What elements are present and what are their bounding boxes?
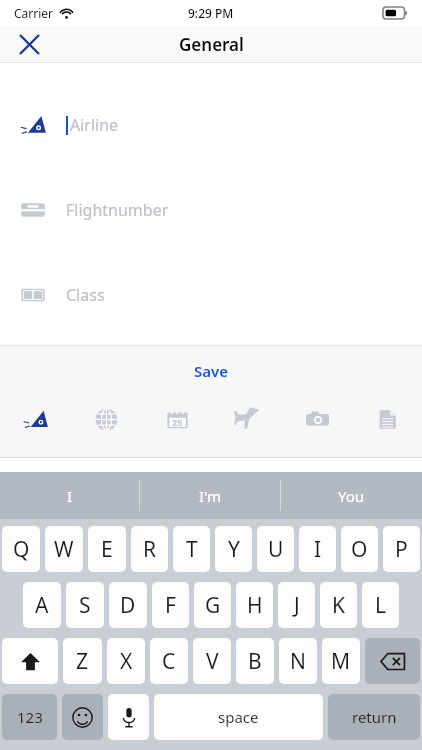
button[interactable]: A	[23, 582, 61, 628]
staticText: You	[338, 486, 365, 506]
button[interactable]: Backspace	[365, 638, 420, 684]
button[interactable]: I	[299, 526, 336, 572]
staticText: K	[332, 591, 345, 620]
button[interactable]: Z	[63, 638, 102, 684]
button[interactable]: Airline	[0, 395, 71, 443]
button[interactable]: F	[152, 582, 189, 628]
button[interactable]: T	[173, 526, 210, 572]
button[interactable]: Globe	[71, 395, 142, 443]
button[interactable]: Calendar	[142, 395, 212, 443]
staticText: E	[101, 535, 113, 564]
staticText: return	[352, 707, 397, 727]
button[interactable]: O	[341, 526, 378, 572]
button[interactable]: D	[109, 582, 147, 628]
staticText: U	[268, 535, 284, 564]
button[interactable]: Class	[0, 277, 422, 313]
button[interactable]: Emoji	[62, 694, 103, 740]
staticText: L	[375, 591, 387, 620]
staticText: Class	[66, 284, 105, 306]
button[interactable]: Y	[215, 526, 252, 572]
button[interactable]: V	[193, 638, 231, 684]
staticText: Carrier	[14, 5, 54, 21]
staticText: 25	[172, 416, 183, 428]
staticText: C	[162, 647, 176, 676]
staticText: M	[331, 647, 351, 676]
staticText: 9:29 PM	[188, 5, 234, 21]
staticText: G	[205, 591, 221, 620]
staticText: T	[186, 535, 198, 564]
button[interactable]: return	[328, 694, 420, 740]
staticText: W	[54, 535, 74, 564]
button[interactable]: Camera	[282, 395, 352, 443]
button[interactable]: Document	[352, 395, 422, 443]
button[interactable]: H	[236, 582, 273, 628]
staticText: Z	[76, 647, 89, 676]
button[interactable]: B	[236, 638, 274, 684]
staticText: B	[248, 647, 262, 676]
staticText: X	[120, 647, 133, 676]
staticText: P	[395, 535, 408, 564]
button[interactable]: E	[88, 526, 126, 572]
staticText: I	[67, 486, 73, 506]
staticText: H	[247, 591, 263, 620]
button[interactable]: Close	[10, 26, 48, 63]
button[interactable]: J	[278, 582, 315, 628]
button[interactable]: N	[279, 638, 317, 684]
button[interactable]: I'm	[140, 472, 281, 519]
button[interactable]: P	[383, 526, 420, 572]
button[interactable]: M	[322, 638, 360, 684]
staticText: Save	[194, 361, 229, 381]
staticText: Airline	[70, 114, 119, 136]
staticText: space	[218, 707, 259, 727]
staticText: O	[351, 535, 368, 564]
staticText: Y	[228, 535, 240, 564]
button[interactable]: I	[0, 472, 140, 519]
button[interactable]: Save	[176, 357, 247, 385]
button[interactable]: K	[320, 582, 357, 628]
staticText: A	[35, 591, 49, 620]
button[interactable]: Q	[2, 526, 40, 572]
staticText: General	[179, 33, 244, 56]
staticText: R	[143, 535, 157, 564]
button[interactable]: L	[362, 582, 399, 628]
button[interactable]: space	[154, 694, 323, 740]
staticText: S	[79, 591, 91, 620]
staticText: F	[165, 591, 176, 620]
button[interactable]: S	[66, 582, 104, 628]
button[interactable]: U	[257, 526, 294, 572]
staticText: J	[294, 591, 300, 620]
button[interactable]: C	[150, 638, 188, 684]
button[interactable]: Flightnumber	[0, 192, 422, 228]
button[interactable]: G	[194, 582, 231, 628]
button[interactable]: Airline	[0, 107, 422, 143]
button[interactable]: W	[45, 526, 83, 572]
staticText: 123	[17, 707, 43, 727]
button[interactable]: Shift	[2, 638, 58, 684]
staticText: N	[290, 647, 306, 676]
button[interactable]: You	[281, 472, 422, 519]
button[interactable]: R	[131, 526, 168, 572]
button[interactable]: X	[107, 638, 145, 684]
button[interactable]: Flights	[212, 395, 282, 443]
staticText: I'm	[199, 486, 222, 506]
staticText: V	[206, 647, 219, 676]
staticText: Q	[13, 535, 30, 564]
staticText: D	[120, 591, 136, 620]
staticText: I	[314, 535, 322, 564]
button[interactable]: Dictation	[108, 694, 149, 740]
staticText: Flightnumber	[66, 199, 169, 221]
button[interactable]: 123	[2, 694, 57, 740]
